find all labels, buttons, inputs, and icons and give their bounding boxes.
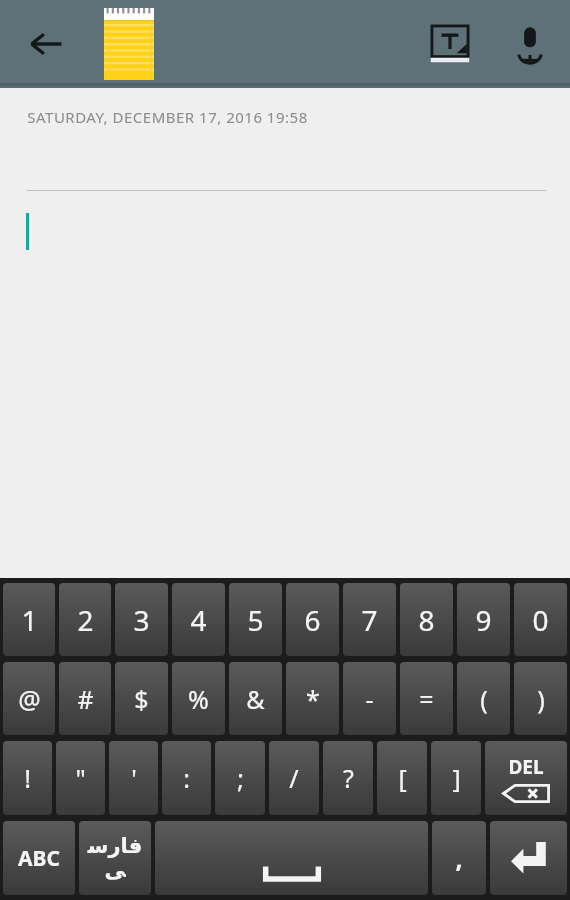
staticText: ) [537, 682, 545, 716]
staticText: 8 [418, 601, 435, 639]
button[interactable]: ' [109, 741, 158, 815]
staticText: ] [452, 761, 461, 795]
staticText: SATURDAY, DECEMBER 17, 2016 19:58 [27, 107, 308, 127]
button[interactable]: SATURDAY, DECEMBER 17, 2016 19:58 [0, 88, 570, 578]
staticText: 1 [21, 601, 38, 639]
button[interactable]: Space [155, 821, 428, 895]
button[interactable]: ABC [3, 821, 75, 895]
staticText: 5 [247, 601, 264, 639]
button[interactable]: Back [0, 0, 92, 88]
button[interactable]: Notepad [92, 0, 166, 88]
button[interactable]: * [286, 662, 339, 735]
staticText: 9 [475, 601, 492, 639]
staticText: ( [480, 682, 488, 716]
staticText: $ [134, 682, 149, 716]
button[interactable]: Voice input [490, 0, 570, 88]
button[interactable]: ( [457, 662, 510, 735]
staticText: % [188, 682, 209, 716]
button[interactable]: 9 [457, 583, 510, 656]
button[interactable]: / [269, 741, 319, 815]
staticText: 2 [77, 601, 94, 639]
staticText: ' [131, 761, 137, 795]
button[interactable]: 7 [343, 583, 396, 656]
button[interactable]: , [432, 821, 486, 895]
button[interactable]: فارسی [79, 821, 151, 895]
button[interactable]: ! [3, 741, 52, 815]
button[interactable]: Delete [485, 741, 567, 815]
staticText: & [246, 682, 265, 716]
staticText: # [77, 682, 94, 716]
staticText: [ [398, 761, 407, 795]
button[interactable]: = [400, 662, 453, 735]
button[interactable]: ; [215, 741, 265, 815]
staticText: , [455, 841, 463, 875]
button[interactable]: 4 [172, 583, 225, 656]
button[interactable]: Text format [410, 0, 490, 88]
button[interactable]: 5 [229, 583, 282, 656]
staticText: 7 [361, 601, 378, 639]
button[interactable]: & [229, 662, 282, 735]
button[interactable]: 2 [59, 583, 111, 656]
staticText: ; [237, 761, 244, 795]
staticText: ? [343, 761, 354, 795]
button[interactable]: 1 [3, 583, 55, 656]
staticText: DEL [508, 754, 544, 780]
staticText: * [306, 682, 320, 716]
button[interactable]: ] [431, 741, 481, 815]
button[interactable]: 3 [115, 583, 168, 656]
staticText: : [183, 761, 190, 795]
button[interactable]: $ [115, 662, 168, 735]
staticText: 3 [133, 601, 150, 639]
staticText: = [419, 682, 434, 716]
button[interactable]: ? [323, 741, 373, 815]
button[interactable]: " [56, 741, 105, 815]
staticText: / [289, 761, 299, 795]
button[interactable]: [ [377, 741, 427, 815]
staticText: ABC [18, 844, 60, 873]
button[interactable]: @ [3, 662, 55, 735]
button[interactable]: 6 [286, 583, 339, 656]
button[interactable]: - [343, 662, 396, 735]
button[interactable]: ) [514, 662, 567, 735]
staticText: " [75, 761, 86, 795]
staticText: - [365, 682, 374, 716]
staticText: @ [18, 682, 41, 716]
staticText: فارسی [79, 834, 151, 882]
staticText: 4 [190, 601, 207, 639]
button[interactable]: % [172, 662, 225, 735]
button[interactable]: # [59, 662, 111, 735]
staticText: ! [24, 761, 31, 795]
button[interactable]: Enter [490, 821, 567, 895]
button[interactable]: 8 [400, 583, 453, 656]
button[interactable]: : [162, 741, 211, 815]
staticText: 6 [304, 601, 321, 639]
button[interactable]: 0 [514, 583, 567, 656]
staticText: 0 [532, 601, 549, 639]
